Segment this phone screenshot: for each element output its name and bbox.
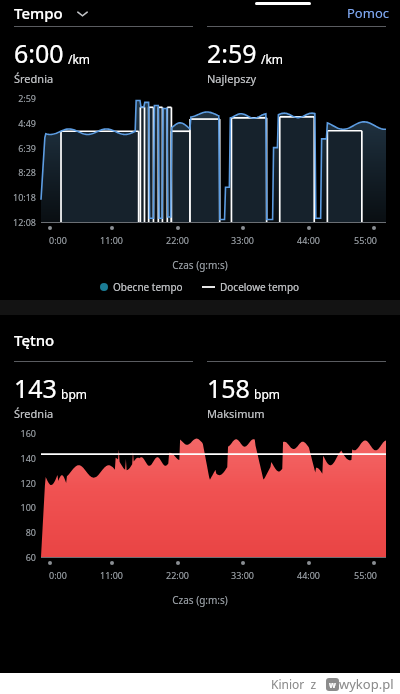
staticText: Tętno: [14, 330, 55, 350]
staticText: 100: [0, 501, 36, 513]
staticText: 140: [0, 452, 36, 464]
staticText: Obecne tempo: [113, 280, 183, 294]
button[interactable]: 2:59: [207, 26, 386, 86]
button[interactable]: Tempo: [12, 0, 91, 26]
staticText: 10:18: [0, 191, 36, 203]
staticText: w: [329, 679, 336, 690]
staticText: 2:59: [207, 36, 257, 70]
staticText: 11:00: [100, 569, 124, 581]
staticText: 55:00: [354, 569, 378, 581]
staticText: Najlepszy: [207, 71, 257, 86]
staticText: wykop.pl: [339, 675, 394, 693]
staticText: Kinior z: [271, 676, 317, 692]
staticText: /km: [68, 51, 91, 67]
staticText: 33:00: [231, 569, 255, 581]
staticText: Pomoc: [347, 4, 389, 22]
staticText: 143: [14, 371, 57, 405]
button[interactable]: Pomoc: [337, 0, 400, 26]
staticText: 60: [0, 551, 36, 563]
staticText: bpm: [254, 386, 280, 402]
staticText: 33:00: [231, 234, 255, 246]
staticText: Czas (g:m:s): [0, 258, 400, 272]
staticText: 22:00: [166, 234, 190, 246]
staticText: 11:00: [100, 234, 124, 246]
staticText: Średnia: [14, 71, 54, 86]
staticText: 80: [0, 526, 36, 538]
staticText: 8:28: [0, 166, 36, 178]
other: Zmień metrykę: [76, 7, 89, 20]
staticText: 2:59: [0, 92, 36, 104]
staticText: 6:00: [14, 36, 64, 70]
button[interactable]: 6:00: [14, 26, 193, 86]
staticText: Średnia: [14, 406, 54, 421]
staticText: 44:00: [297, 234, 321, 246]
staticText: bpm: [61, 386, 87, 402]
staticText: 44:00: [297, 569, 321, 581]
staticText: 0:00: [49, 569, 67, 581]
staticText: 12:08: [0, 216, 36, 228]
button[interactable]: 158: [207, 361, 386, 421]
staticText: Maksimum: [207, 406, 265, 421]
staticText: /km: [261, 51, 284, 67]
staticText: Docelowe tempo: [220, 280, 300, 294]
staticText: 120: [0, 477, 36, 489]
staticText: 6:39: [0, 142, 36, 154]
staticText: 158: [207, 371, 250, 405]
button[interactable]: 143: [14, 361, 193, 421]
staticText: Tempo: [14, 3, 63, 23]
staticText: 22:00: [166, 569, 190, 581]
staticText: 160: [0, 427, 36, 439]
staticText: 55:00: [354, 234, 378, 246]
staticText: 4:49: [0, 117, 36, 129]
staticText: Czas (g:m:s): [0, 593, 400, 607]
staticText: 0:00: [49, 234, 67, 246]
